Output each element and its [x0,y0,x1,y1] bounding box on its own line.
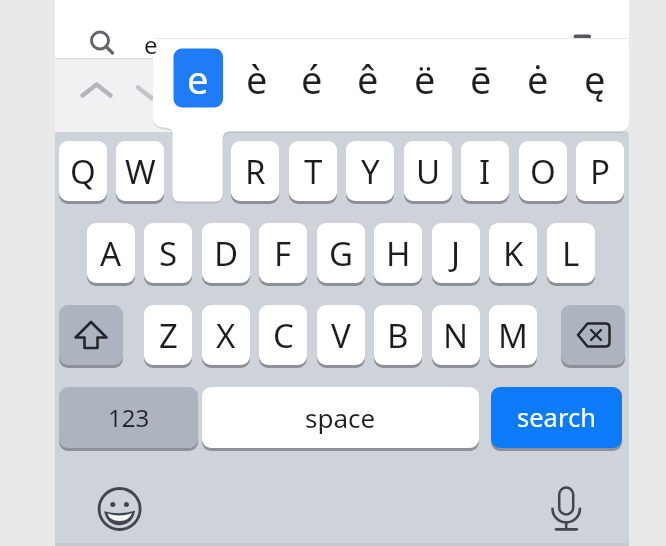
button[interactable]: U [404,141,452,204]
staticText: N [443,313,469,358]
button[interactable]: ë [397,48,453,110]
button[interactable]: Q [59,141,107,204]
staticText: Z [159,313,178,358]
staticText: F [274,231,292,276]
button[interactable]: Y [346,141,394,204]
staticText: ë [414,53,436,105]
staticText: S [159,231,178,276]
button[interactable]: e [170,48,226,110]
staticText: ē [470,53,492,105]
button[interactable]: X [202,305,250,368]
button[interactable] [75,72,119,108]
staticText: e [144,28,158,61]
button[interactable]: P [576,141,624,204]
staticText: L [562,231,580,276]
staticText: 123 [108,401,150,434]
button[interactable]: O [519,141,567,204]
button[interactable]: W [116,141,164,204]
staticText: ê [357,53,379,105]
button[interactable]: A [87,223,135,286]
staticText: é [301,53,323,105]
staticText: T [304,149,323,194]
button[interactable]: ę [567,48,623,110]
staticText: U [416,149,441,194]
staticText: W [125,149,156,194]
staticText: C [273,313,294,358]
button[interactable]: R [231,141,279,204]
staticText: D [214,231,239,276]
button[interactable] [55,0,629,58]
button[interactable] [130,72,174,108]
staticText: Y [361,149,380,194]
button[interactable]: T [289,141,337,204]
button[interactable]: è [229,48,285,110]
button[interactable]: D [202,223,250,286]
staticText: ė [527,53,549,105]
button[interactable]: ê [340,48,396,110]
staticText: A [100,231,122,276]
button[interactable]: C [259,305,307,368]
button[interactable] [561,305,625,368]
staticText: B [387,313,409,358]
staticText: O [530,149,556,194]
button[interactable]: ē [453,48,509,110]
staticText: Q [70,149,96,194]
button[interactable]: F [259,223,307,286]
button[interactable]: L [547,223,595,286]
staticText: è [246,53,268,105]
staticText: I [479,149,491,194]
button[interactable]: H [374,223,422,286]
button[interactable] [95,485,145,535]
button[interactable]: J [432,223,480,286]
staticText: V [331,313,351,358]
staticText: P [590,149,610,194]
button[interactable] [541,485,591,535]
staticText: K [503,231,524,276]
staticText: R [245,149,266,194]
button[interactable]: space [202,387,479,451]
button[interactable]: N [432,305,480,368]
button[interactable]: search [491,387,622,451]
button[interactable]: Z [144,305,192,368]
button[interactable]: K [489,223,537,286]
button[interactable]: I [461,141,509,204]
button[interactable]: G [317,223,365,286]
button[interactable]: ė [510,48,566,110]
staticText: space [305,400,376,435]
staticText: X [216,313,236,358]
button[interactable]: B [374,305,422,368]
button[interactable]: é [284,48,340,110]
staticText: H [386,231,411,276]
button[interactable] [59,305,123,368]
staticText: ę [584,53,606,105]
staticText: G [329,231,354,276]
staticText: search [517,400,596,435]
staticText: e [187,53,209,105]
button[interactable]: V [317,305,365,368]
staticText: M [498,313,528,358]
button[interactable]: S [144,223,192,286]
button[interactable]: 123 [59,387,198,451]
button[interactable]: M [489,305,537,368]
staticText: J [451,231,461,276]
